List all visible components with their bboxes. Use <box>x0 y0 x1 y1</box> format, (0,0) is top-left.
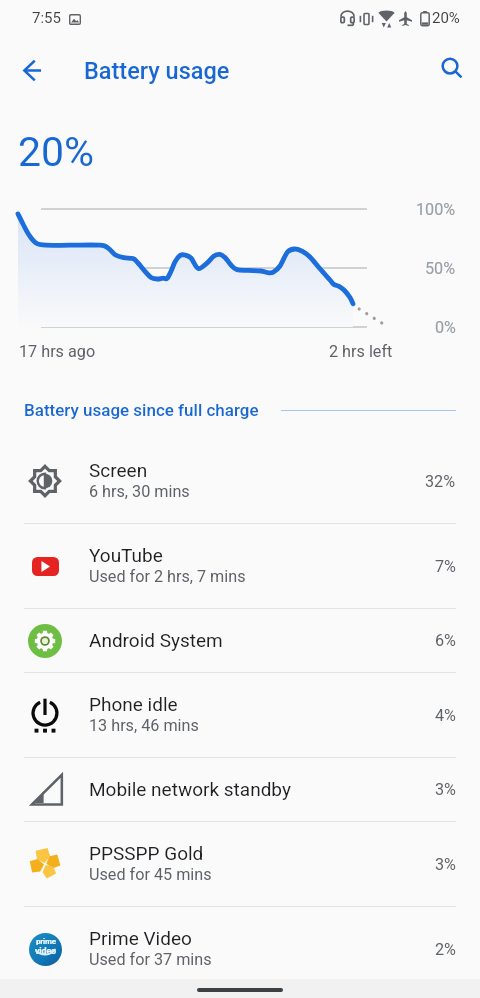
staticText: 20% <box>432 9 460 27</box>
staticText: 2% <box>435 940 456 959</box>
staticText: 17 hrs ago <box>19 342 96 361</box>
staticText: 7:55 <box>32 9 61 27</box>
button[interactable]: Mobile network standby <box>0 758 480 821</box>
staticText: Prime Video <box>89 927 192 949</box>
staticText: Android System <box>89 629 223 651</box>
staticText: video <box>35 946 56 957</box>
button[interactable]: PPSSPP Gold <box>0 822 480 906</box>
staticText: Used for 45 mins <box>89 865 212 884</box>
staticText: Battery usage <box>84 57 230 85</box>
button[interactable]: prime <box>0 907 480 991</box>
staticText: YouTube <box>89 544 163 566</box>
staticText: 6% <box>435 631 456 650</box>
staticText: Mobile network standby <box>89 778 291 800</box>
staticText: 3% <box>435 780 456 799</box>
button[interactable]: Phone idle <box>0 673 480 757</box>
staticText: 4% <box>435 706 456 725</box>
staticText: 7% <box>435 557 456 576</box>
button[interactable]: YouTube <box>0 524 480 608</box>
staticText: 100% <box>416 200 456 219</box>
staticText: Battery usage since full charge <box>24 400 259 420</box>
staticText: Used for 2 hrs, 7 mins <box>89 567 246 586</box>
staticText: Screen <box>89 459 148 481</box>
button[interactable]: Screen <box>0 439 480 523</box>
staticText: 32% <box>425 472 456 491</box>
button[interactable]: Back <box>8 46 56 94</box>
staticText: prime <box>36 937 56 946</box>
button[interactable]: Android System <box>0 609 480 672</box>
staticText: 13 hrs, 46 mins <box>89 716 199 735</box>
staticText: Used for 37 mins <box>89 950 212 969</box>
staticText: PPSSPP Gold <box>89 842 204 864</box>
staticText: Phone idle <box>89 693 178 715</box>
staticText: 50% <box>425 259 456 278</box>
staticText: 0% <box>435 318 456 337</box>
staticText: 20% <box>18 128 95 176</box>
staticText: 6 hrs, 30 mins <box>89 482 190 501</box>
button[interactable]: Search <box>428 46 476 94</box>
staticText: 3% <box>435 855 456 874</box>
staticText: 2 hrs left <box>329 342 393 361</box>
